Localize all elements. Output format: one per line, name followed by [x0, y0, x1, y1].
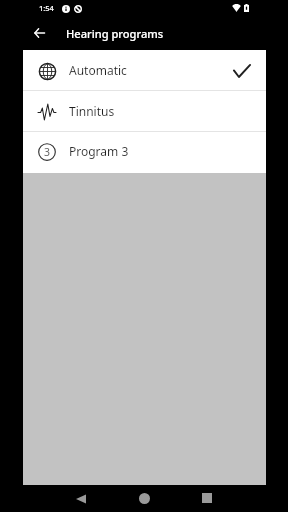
staticText: Tinnitus: [69, 103, 115, 119]
staticText: 1:54: [39, 3, 54, 13]
button[interactable]: Automatic: [23, 50, 266, 91]
staticText: 3: [44, 145, 51, 159]
button[interactable]: 3: [23, 132, 266, 173]
button[interactable]: Back: [25, 19, 53, 47]
staticText: Hearing programs: [66, 26, 164, 41]
staticText: Program 3: [69, 143, 129, 159]
staticText: Automatic: [69, 62, 127, 78]
button[interactable]: Back: [65, 483, 96, 512]
button[interactable]: Tinnitus: [23, 91, 266, 132]
button[interactable]: Home: [129, 483, 160, 512]
button[interactable]: Recents: [191, 482, 222, 512]
